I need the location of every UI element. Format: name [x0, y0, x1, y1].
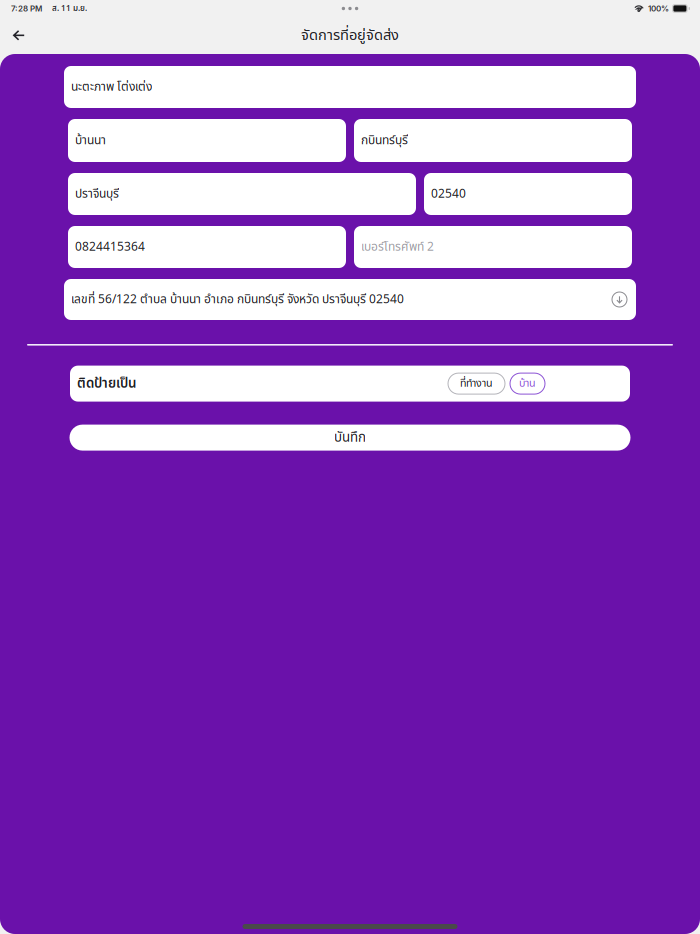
- button[interactable]: บันทึก: [69, 425, 630, 451]
- button[interactable]: บ้าน: [510, 373, 545, 394]
- staticText: จัดการที่อยู่จัดส่ง: [301, 24, 399, 47]
- button[interactable]: เลขที่ 56/122 ตำบล บ้านนา อำเภอ กบินทร์บ…: [64, 279, 636, 320]
- staticText: เบอร์โทรศัพท์ 2: [361, 238, 434, 256]
- staticText: กบินทร์บุรี: [361, 131, 408, 149]
- staticText: ที่ทำงาน: [460, 375, 493, 392]
- button[interactable]: 0824415364: [68, 226, 346, 268]
- staticText: ติดป้ายเป็น: [77, 373, 136, 394]
- button[interactable]: 02540: [424, 173, 632, 215]
- staticText: บันทึก: [334, 427, 366, 448]
- button[interactable]: บ้านนา: [68, 119, 346, 162]
- button[interactable]: ที่ทำงาน: [448, 373, 505, 394]
- button[interactable]: นะตะภาพ โต่งเต่ง: [64, 66, 636, 108]
- button[interactable]: Back: [0, 22, 39, 49]
- staticText: ปราจีนบุรี: [75, 185, 119, 203]
- button[interactable]: เบอร์โทรศัพท์ 2: [354, 226, 632, 268]
- staticText: ส. 11 มิ.ย.: [52, 2, 87, 15]
- staticText: 0824415364: [75, 238, 145, 256]
- staticText: 02540: [431, 185, 466, 203]
- staticText: บ้าน: [519, 375, 536, 392]
- staticText: เลขที่ 56/122 ตำบล บ้านนา อำเภอ กบินทร์บ…: [71, 290, 404, 308]
- button[interactable]: กบินทร์บุรี: [354, 119, 632, 162]
- staticText: 7:28 PM: [11, 4, 42, 13]
- staticText: 100%: [648, 4, 669, 13]
- staticText: นะตะภาพ โต่งเต่ง: [71, 78, 152, 96]
- staticText: บ้านนา: [75, 131, 106, 149]
- button[interactable]: ปราจีนบุรี: [68, 173, 416, 215]
